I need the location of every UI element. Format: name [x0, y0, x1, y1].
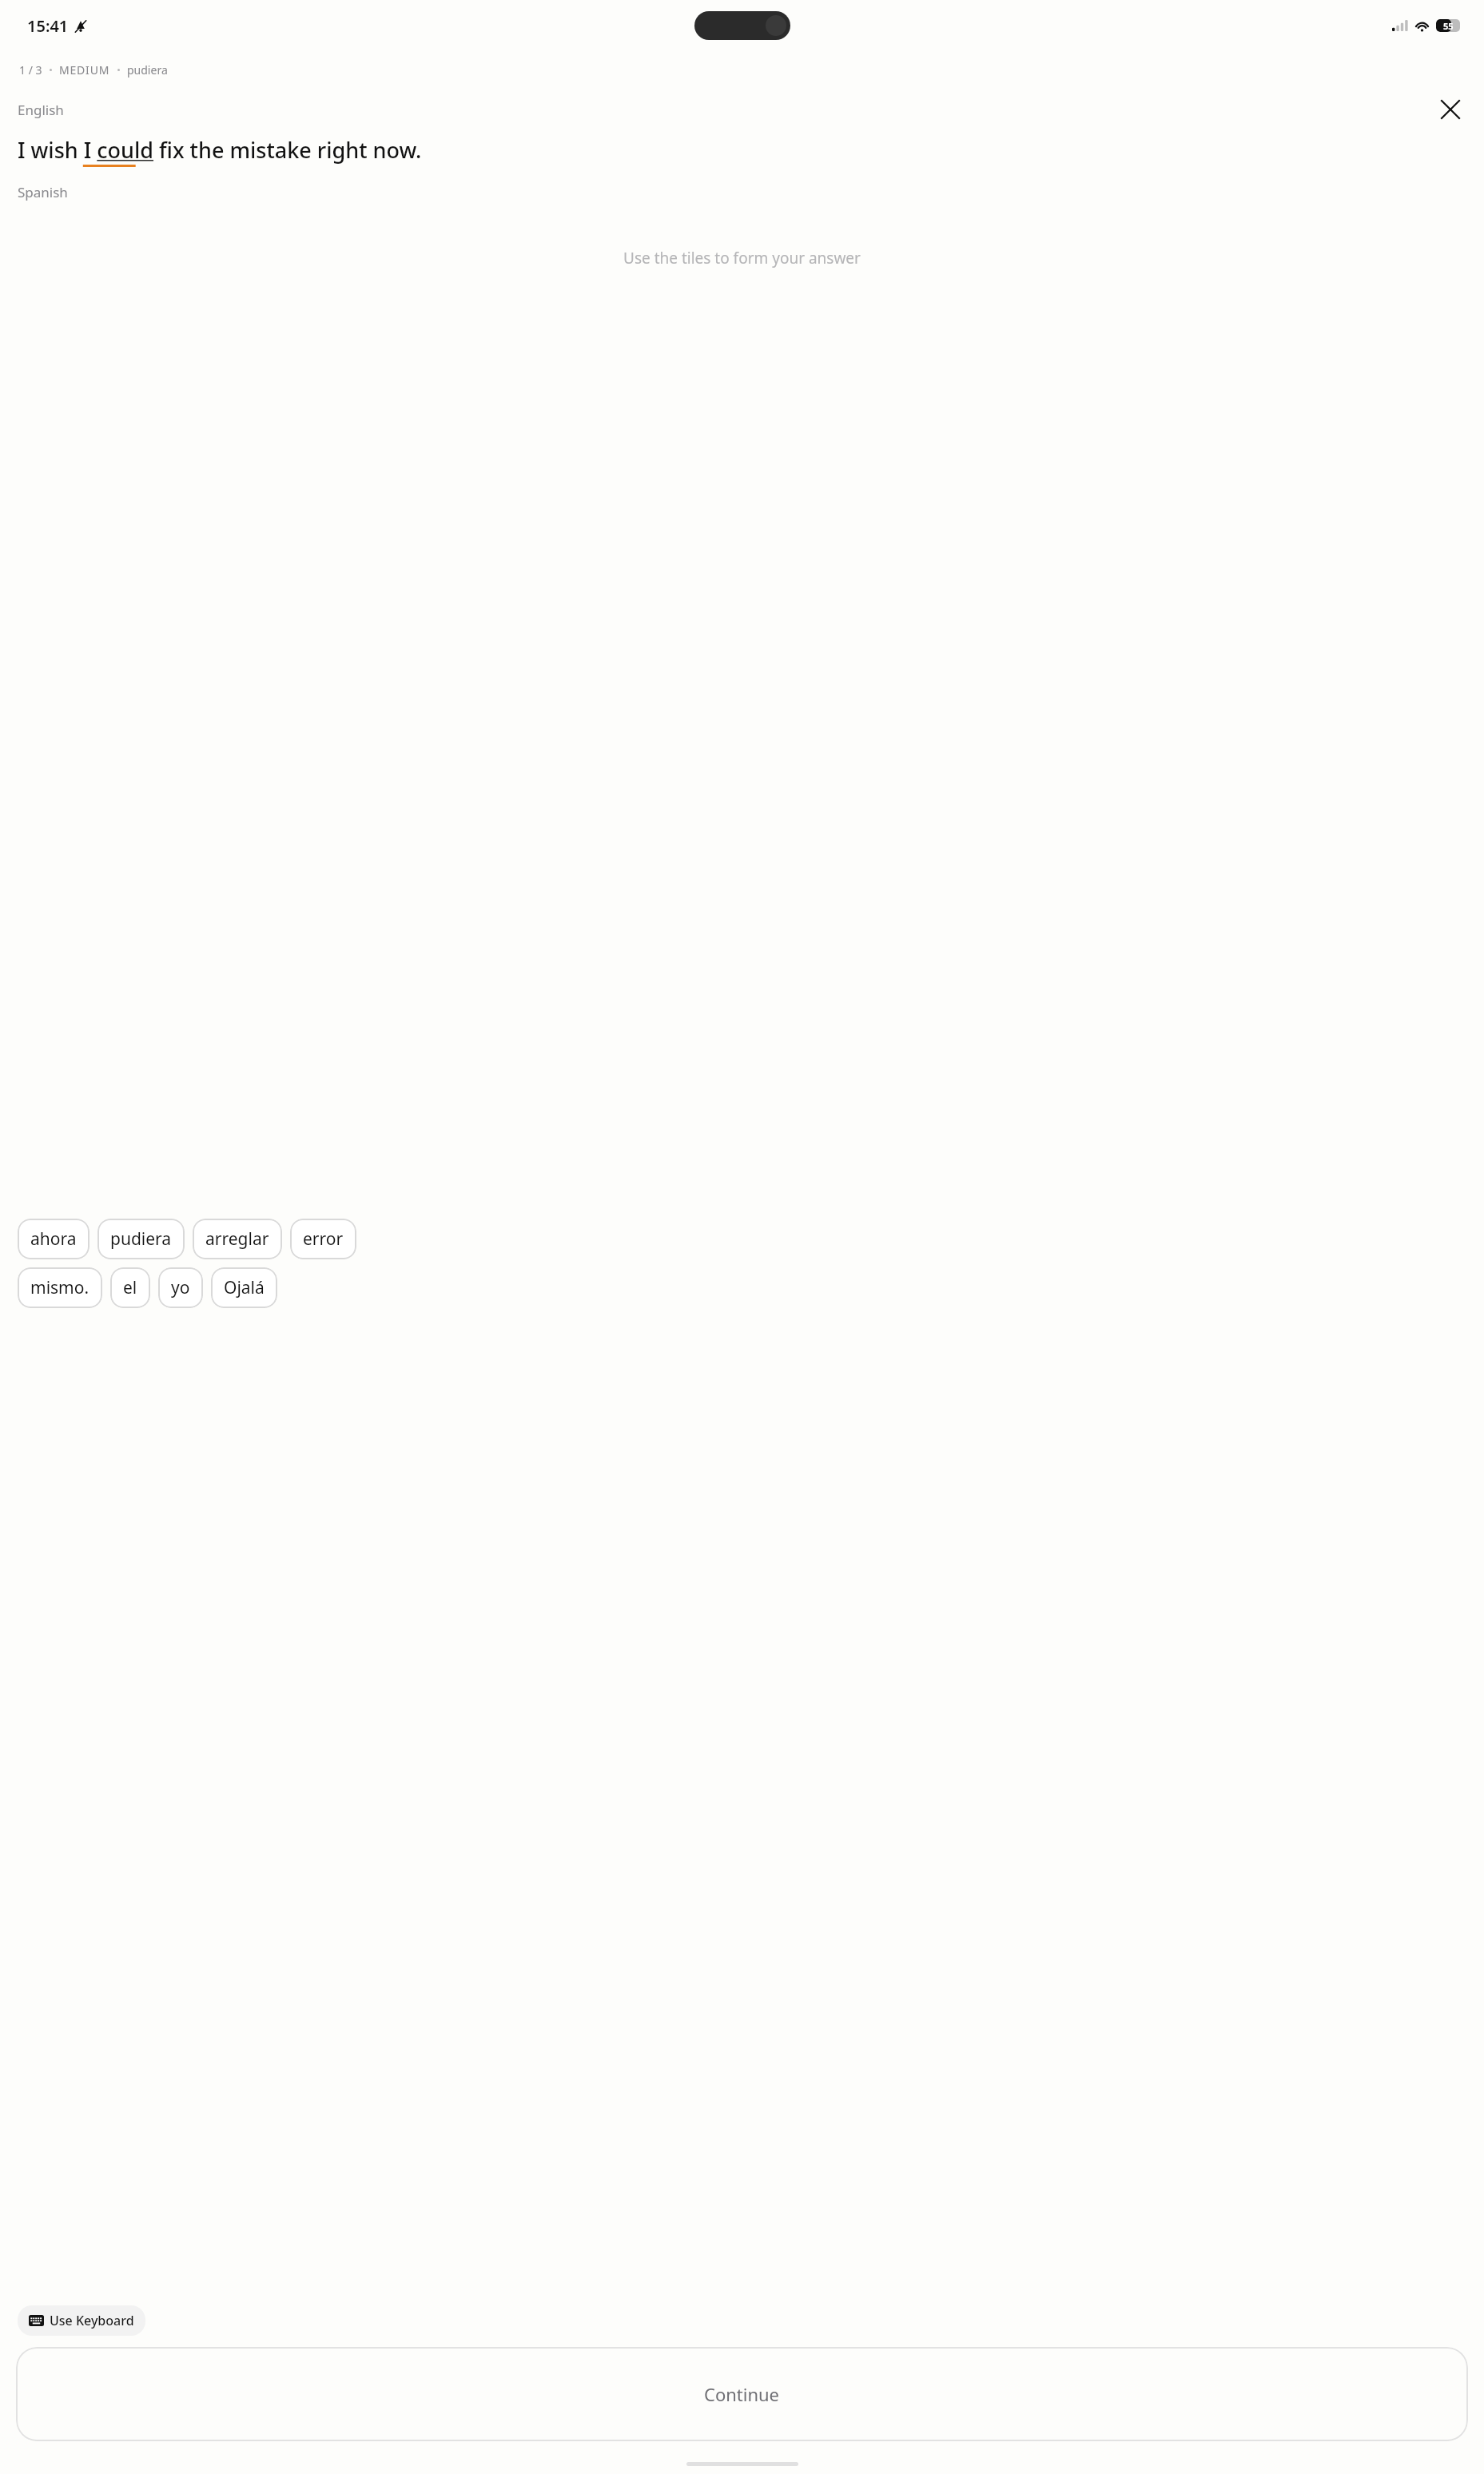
staticText: 1 / 3 — [19, 62, 42, 78]
button[interactable]: el — [110, 1267, 150, 1308]
staticText: I wish I could fix the mistake right now… — [18, 135, 1466, 165]
staticText: English — [18, 101, 64, 119]
staticText: Continue — [704, 2382, 780, 2406]
staticText: arreglar — [205, 1227, 269, 1251]
staticText: ahora — [30, 1227, 77, 1251]
staticText: error — [303, 1227, 344, 1251]
staticText: yo — [171, 1276, 190, 1299]
staticText: Spanish — [18, 183, 68, 201]
button[interactable]: arreglar — [193, 1219, 282, 1259]
button[interactable]: mismo. — [18, 1267, 102, 1308]
staticText: pudiera — [110, 1227, 172, 1251]
button[interactable]: pudiera — [97, 1219, 185, 1259]
button[interactable]: yo — [158, 1267, 203, 1308]
button[interactable]: error — [290, 1219, 356, 1259]
staticText: Ojalá — [224, 1276, 265, 1299]
staticText: MEDIUM — [59, 62, 110, 78]
staticText: el — [123, 1276, 137, 1299]
staticText: pudiera — [127, 62, 168, 78]
staticText: Use Keyboard — [50, 2312, 134, 2329]
button[interactable]: Use Keyboard — [18, 2305, 145, 2336]
button[interactable]: ahora — [18, 1219, 90, 1259]
button[interactable]: Continue — [16, 2347, 1468, 2441]
staticText: mismo. — [30, 1276, 90, 1299]
staticText: Use the tiles to form your answer — [623, 248, 861, 268]
button[interactable]: Close — [1433, 92, 1468, 127]
staticText: 55 — [1443, 20, 1454, 32]
button[interactable]: Ojalá — [211, 1267, 277, 1308]
staticText: 15:41 — [27, 15, 69, 37]
